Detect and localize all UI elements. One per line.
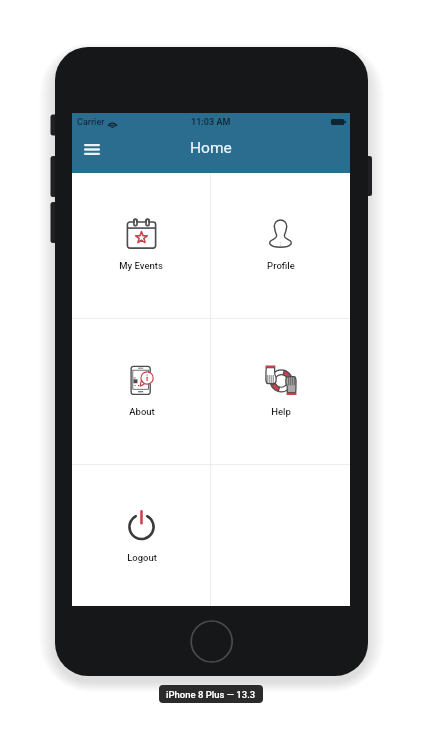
button[interactable]: Open navigation menu bbox=[78, 135, 106, 163]
staticText: Help bbox=[271, 406, 291, 417]
staticText: My Events bbox=[119, 260, 163, 271]
staticText: Logout bbox=[127, 552, 157, 563]
button[interactable]: Profile bbox=[211, 173, 350, 318]
button[interactable]: Help bbox=[211, 319, 350, 464]
button[interactable]: Logout bbox=[72, 465, 210, 606]
staticText: Carrier bbox=[77, 117, 105, 128]
staticText: iPhone 8 Plus — 13.3 bbox=[166, 689, 256, 700]
button[interactable]: My Events bbox=[72, 173, 210, 318]
staticText: 11:03 AM bbox=[191, 117, 231, 128]
button[interactable]: About bbox=[72, 319, 210, 464]
staticText: Profile bbox=[267, 260, 295, 271]
staticText: About bbox=[129, 406, 155, 417]
staticText: Home bbox=[190, 139, 232, 157]
